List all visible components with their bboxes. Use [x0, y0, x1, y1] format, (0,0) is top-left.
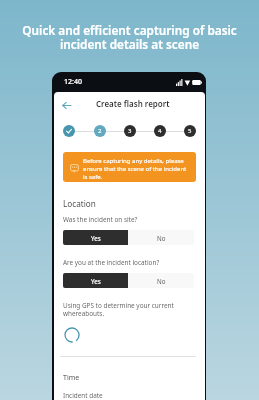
button[interactable]: Yes — [63, 273, 128, 288]
button[interactable]: Yes — [63, 230, 128, 245]
staticText: Before capturing any details, please ens… — [83, 157, 187, 181]
button[interactable]: 5 — [184, 125, 196, 137]
button[interactable]: 2 — [94, 125, 106, 137]
staticText: Incident date — [63, 391, 103, 400]
staticText: Location — [63, 198, 96, 209]
staticText: 2 — [98, 127, 102, 135]
staticText: 12:40 — [64, 77, 82, 87]
button[interactable]: Before capturing any details, please ens… — [63, 152, 196, 182]
staticText: Quick and efficient capturing of basic i… — [0, 22, 259, 52]
staticText: 3 — [128, 127, 132, 135]
staticText: No — [157, 234, 166, 242]
button[interactable]: 4 — [154, 125, 166, 137]
staticText: Create flash report — [96, 98, 170, 109]
button[interactable]: No — [128, 273, 194, 288]
staticText: Are you at the incident location? — [63, 258, 160, 267]
button[interactable]: Back — [56, 95, 76, 115]
staticText: Using GPS to determine your current wher… — [63, 301, 174, 318]
button[interactable]: 3 — [124, 125, 136, 137]
staticText: Was the incident on site? — [63, 215, 138, 224]
staticText: 5 — [188, 127, 192, 135]
button[interactable]: No — [128, 230, 194, 245]
staticText: Yes — [91, 277, 101, 285]
staticText: 4 — [158, 127, 162, 135]
button[interactable]: Step 1 completed — [63, 125, 75, 137]
staticText: Time — [63, 373, 80, 383]
staticText: Yes — [91, 234, 101, 242]
staticText: No — [157, 277, 166, 285]
